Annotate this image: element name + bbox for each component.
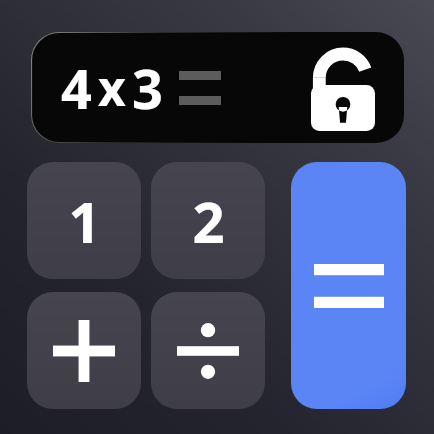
button[interactable]: Unlock xyxy=(311,45,375,131)
button[interactable]: Plus xyxy=(27,292,141,409)
staticText: 1 xyxy=(68,183,101,259)
staticText: 2 xyxy=(192,183,225,259)
staticText: x xyxy=(98,55,126,120)
button[interactable]: 1 xyxy=(27,162,141,279)
staticText: 3 xyxy=(132,51,163,125)
button[interactable]: Equals xyxy=(291,162,406,409)
button[interactable]: 2 xyxy=(151,162,265,279)
button[interactable]: 4 xyxy=(31,32,404,143)
button[interactable]: Divide xyxy=(151,292,265,409)
staticText: 4 xyxy=(61,51,92,125)
